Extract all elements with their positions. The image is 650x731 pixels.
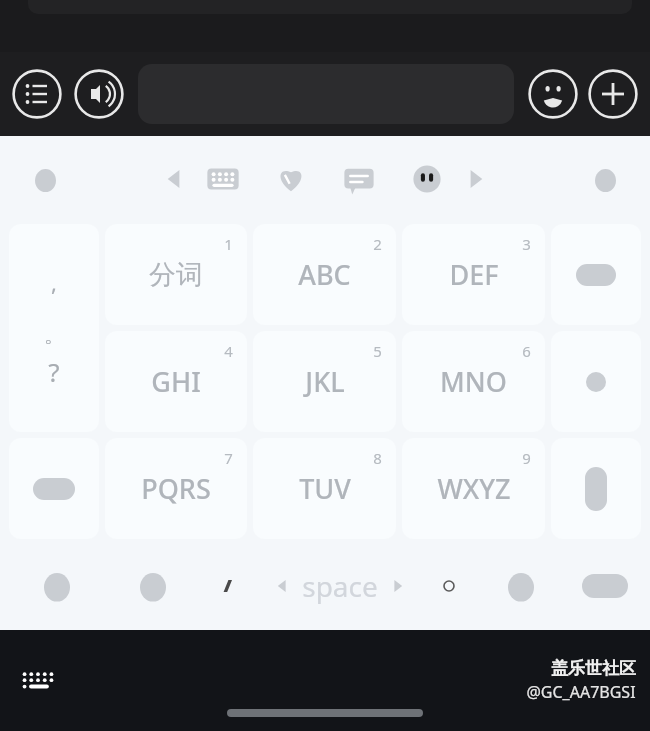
button[interactable]	[551, 331, 641, 432]
button[interactable]: More	[588, 162, 622, 196]
button[interactable]: Emoji	[528, 69, 578, 119]
button[interactable]	[551, 438, 641, 539]
button[interactable]: Add attachment	[588, 69, 638, 119]
button[interactable]: Face sticker	[407, 159, 447, 199]
button[interactable]: Enter	[582, 574, 628, 598]
button[interactable]: Language	[136, 569, 170, 603]
button[interactable]: Favorites	[271, 159, 311, 199]
button[interactable]: Settings	[28, 162, 62, 196]
button[interactable]: Messages	[339, 159, 379, 199]
staticText: 1	[224, 234, 233, 254]
staticText: 4	[224, 341, 233, 361]
button[interactable]: 8	[253, 438, 396, 539]
staticText: 7	[224, 448, 233, 468]
button[interactable]: 2	[253, 224, 396, 325]
staticText: TUV	[299, 470, 351, 507]
staticText: 盖乐世社区	[551, 658, 636, 679]
button[interactable]: 4	[105, 331, 247, 432]
button[interactable]: 6	[402, 331, 545, 432]
button[interactable]: Voice message	[74, 69, 124, 119]
button[interactable]: 7	[105, 438, 247, 539]
staticText: @GC_AA7BGSI	[526, 681, 636, 703]
button[interactable]	[9, 438, 99, 539]
staticText: 9	[522, 448, 531, 468]
button[interactable]: 5	[253, 331, 396, 432]
button[interactable]: Stickers list	[12, 69, 62, 119]
staticText: ?	[48, 354, 60, 389]
staticText: 6	[522, 341, 531, 361]
staticText: GHI	[151, 363, 201, 400]
staticText: ,	[51, 267, 57, 297]
button[interactable]: space	[276, 567, 404, 605]
staticText: 2	[373, 234, 382, 254]
staticText: 分词	[149, 258, 203, 292]
staticText: 。	[44, 323, 64, 348]
staticText: WXYZ	[437, 470, 511, 507]
button[interactable]: Previous	[159, 164, 189, 194]
staticText: MNO	[440, 363, 507, 400]
staticText: 5	[373, 341, 382, 361]
button[interactable]: Comma	[216, 573, 242, 599]
button[interactable]: ,	[9, 224, 99, 432]
button[interactable]	[551, 224, 641, 325]
button[interactable]: Hide keyboard	[16, 659, 60, 703]
button[interactable]: 1	[105, 224, 247, 325]
staticText: space	[302, 567, 378, 605]
staticText: PQRS	[141, 470, 211, 507]
staticText: DEF	[449, 256, 499, 293]
button[interactable]: Keyboard layout	[203, 159, 243, 199]
button[interactable]: Symbols	[40, 569, 74, 603]
button[interactable]: Period	[436, 573, 462, 599]
button[interactable]: 9	[402, 438, 545, 539]
button[interactable]: Next	[461, 164, 491, 194]
staticText: JKL	[305, 363, 345, 400]
button[interactable]: 3	[402, 224, 545, 325]
staticText: ABC	[298, 256, 351, 293]
staticText: 8	[373, 448, 382, 468]
staticText: 3	[522, 234, 531, 254]
button[interactable]: Emoji key	[504, 569, 538, 603]
